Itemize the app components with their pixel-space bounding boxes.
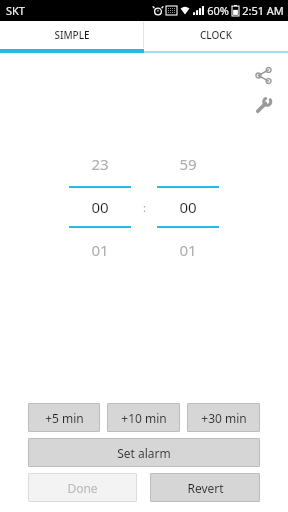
button[interactable]: Done	[28, 473, 137, 502]
staticText: :	[143, 200, 146, 215]
staticText: 23	[91, 154, 109, 174]
button[interactable]: +5 min	[28, 403, 100, 432]
button[interactable]: Revert	[150, 473, 260, 502]
staticText: 2:51 AM	[242, 3, 284, 18]
staticText: SIMPLE	[54, 28, 90, 42]
staticText: 01	[179, 240, 197, 260]
staticText: 59	[179, 154, 197, 174]
button[interactable]: +30 min	[187, 403, 260, 432]
staticText: 00	[91, 197, 109, 217]
staticText: CLOCK	[200, 28, 232, 42]
staticText: +5 min	[45, 410, 84, 426]
staticText: 60%	[207, 3, 229, 18]
staticText: Revert	[187, 480, 224, 496]
button[interactable]: Set alarm	[28, 438, 260, 467]
staticText: 01	[91, 240, 109, 260]
staticText: Set alarm	[117, 445, 171, 461]
staticText: Done	[67, 480, 98, 496]
staticText: +30 min	[201, 410, 247, 426]
staticText: 00	[179, 197, 197, 217]
staticText: SKT	[6, 3, 25, 18]
button[interactable]: 00	[69, 188, 131, 226]
button[interactable]: CLOCK	[144, 21, 288, 49]
button[interactable]: 00	[157, 188, 219, 226]
staticText: +10 min	[121, 410, 167, 426]
button[interactable]: +10 min	[107, 403, 180, 432]
button[interactable]: Settings	[246, 88, 280, 122]
button[interactable]: SIMPLE	[0, 21, 143, 49]
button[interactable]: Share	[246, 58, 280, 92]
